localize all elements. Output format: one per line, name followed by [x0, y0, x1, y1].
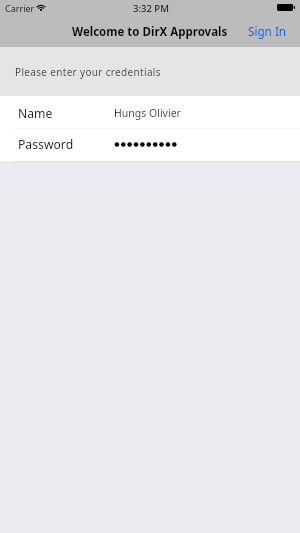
other: Battery full	[277, 4, 295, 11]
staticText: Name	[18, 105, 53, 122]
button[interactable]: Name	[0, 96, 300, 128]
staticText: Hungs Olivier	[114, 106, 181, 120]
staticText: 3:32 PM	[133, 2, 169, 15]
button[interactable]: Sign In	[234, 18, 300, 47]
staticText: Carrier	[5, 2, 35, 14]
button[interactable]: Password	[0, 129, 300, 161]
other: Wi-Fi signal	[37, 4, 45, 11]
staticText: Welcome to DirX Approvals	[72, 24, 228, 40]
staticText: Sign In	[248, 23, 287, 39]
staticText: Please enter your credentials	[15, 65, 161, 79]
staticText: Password	[18, 136, 74, 153]
